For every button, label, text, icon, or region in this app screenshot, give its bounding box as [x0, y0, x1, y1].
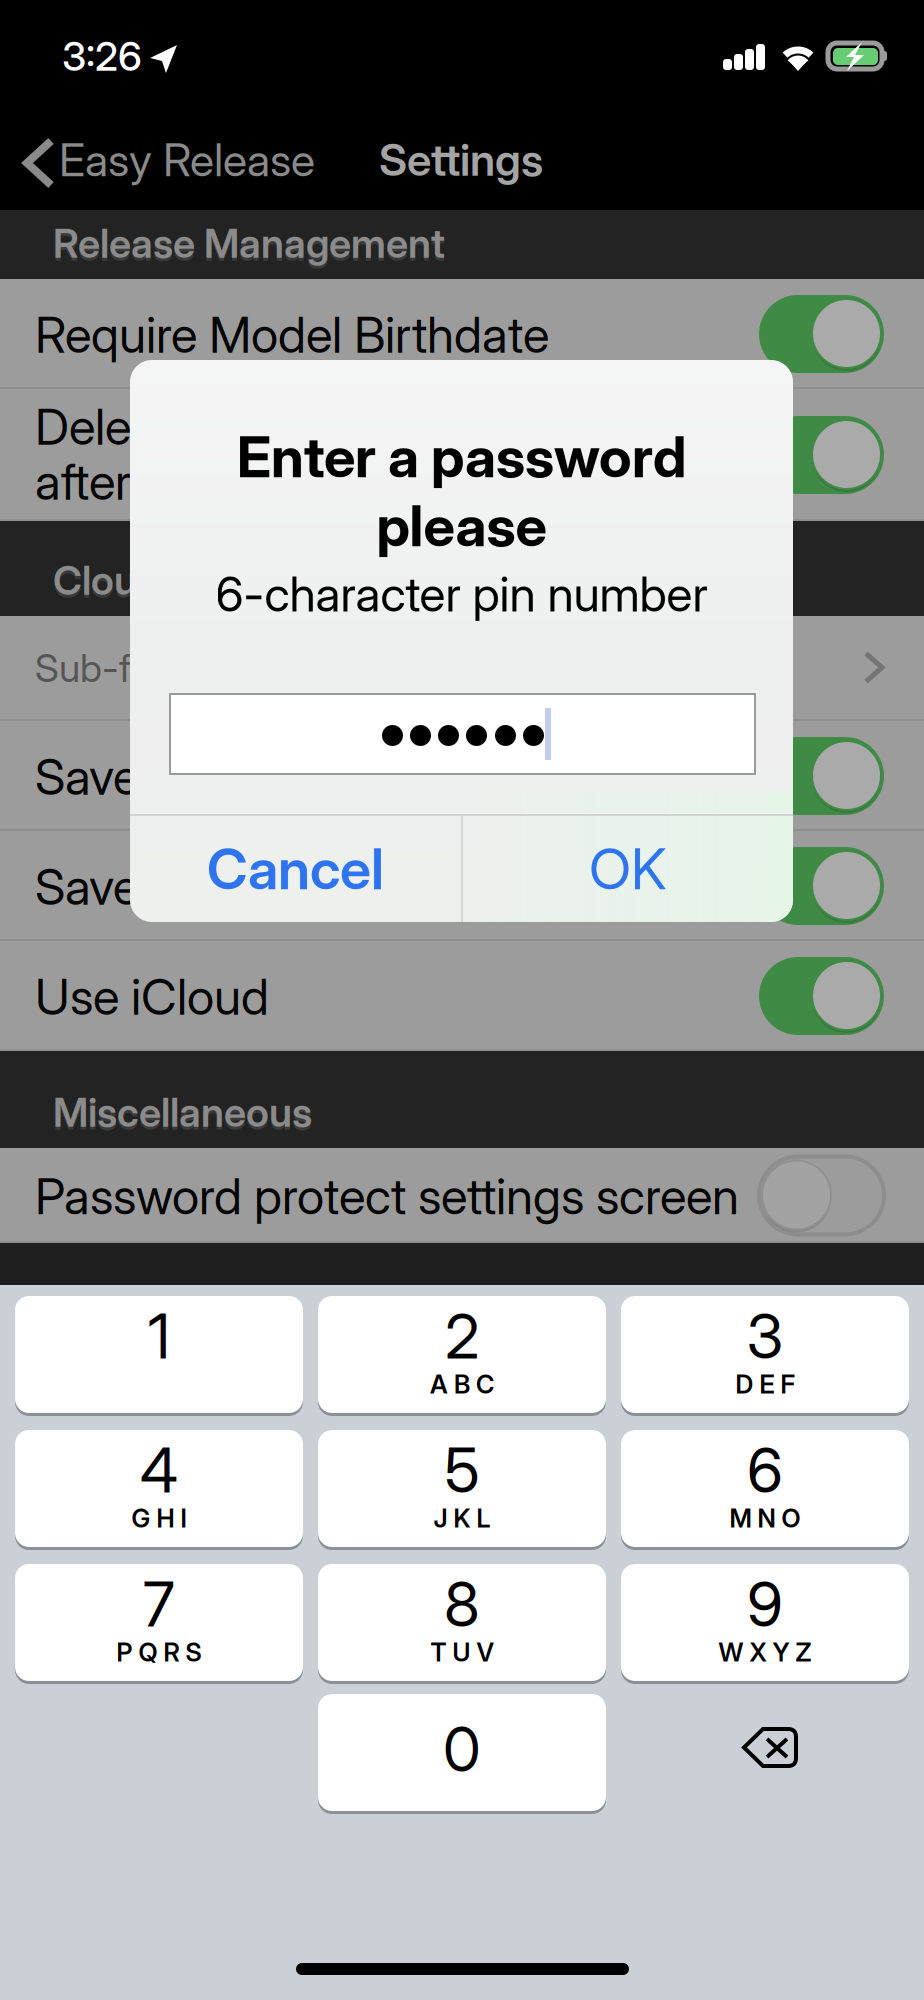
staticText: 7	[143, 1567, 175, 1641]
staticText: 6-character pin number	[215, 565, 707, 623]
button[interactable]: 8	[318, 1564, 606, 1685]
staticText: D E F	[735, 1369, 794, 1400]
staticText: J K L	[433, 1503, 490, 1534]
staticText: T U V	[430, 1637, 493, 1668]
button[interactable]: Delete released models	[0, 389, 924, 521]
staticText: Cloud Storage	[53, 556, 313, 604]
staticText: Release Management	[53, 222, 445, 270]
staticText: W X Y Z	[718, 1637, 811, 1668]
staticText: 5	[444, 1433, 479, 1507]
staticText: Use iCloud	[35, 967, 269, 1027]
button[interactable]: Password protect settings screen	[0, 1148, 924, 1243]
staticText: Miscellaneous	[53, 1091, 312, 1139]
staticText: A B C	[430, 1369, 494, 1400]
staticText: please	[376, 492, 546, 560]
button[interactable]: Sub-folder naming	[0, 616, 924, 721]
button[interactable]: 6	[621, 1430, 909, 1551]
staticText: 6	[747, 1433, 783, 1507]
button[interactable]: OK	[463, 816, 793, 922]
button[interactable]: 4	[15, 1430, 303, 1551]
button[interactable]: Delete	[742, 1726, 799, 1770]
staticText: Save release PDFs	[35, 747, 430, 807]
staticText: 1	[148, 1299, 170, 1373]
staticText: 9	[747, 1567, 783, 1641]
staticText: Save model photos	[35, 857, 442, 917]
button[interactable]: 3	[621, 1296, 909, 1417]
staticText: Cloud Storage	[53, 559, 313, 607]
button[interactable]: 1	[15, 1296, 303, 1417]
staticText: Miscellaneous	[53, 1088, 312, 1136]
button[interactable]: 5	[318, 1430, 606, 1551]
button[interactable]: Require Model Birthdate	[0, 279, 924, 389]
staticText: 3	[746, 1299, 783, 1373]
staticText: Password protect settings screen	[35, 1166, 739, 1226]
staticText: 0	[443, 1712, 481, 1786]
button[interactable]: Use iCloud	[0, 941, 924, 1051]
staticText: P Q R S	[116, 1637, 201, 1668]
staticText: Sub-folder naming	[35, 644, 348, 691]
staticText: M N O	[729, 1503, 800, 1534]
staticText: Cancel	[207, 835, 384, 903]
staticText: Require Model Birthdate	[35, 305, 549, 365]
staticText: after 30 days	[35, 452, 315, 512]
button[interactable]: Easy Release	[0, 110, 330, 210]
staticText: OK	[589, 835, 667, 903]
staticText: G H I	[131, 1503, 186, 1534]
staticText: Enter a password	[237, 423, 686, 491]
staticText: Delete released models	[35, 397, 532, 457]
staticText: 2	[445, 1299, 479, 1373]
staticText: Easy Release	[59, 133, 315, 187]
button[interactable]: 0	[318, 1694, 606, 1815]
staticText: 4	[140, 1433, 178, 1507]
button[interactable]: 2	[318, 1296, 606, 1417]
button[interactable]: Save model photos	[0, 831, 924, 941]
staticText: 8	[444, 1567, 480, 1641]
button[interactable]: 7	[15, 1564, 303, 1685]
staticText: 3:26	[62, 32, 142, 80]
staticText: Release Management	[53, 219, 445, 267]
button[interactable]: Save release PDFs	[0, 721, 924, 831]
staticText: Settings	[379, 133, 543, 186]
button[interactable]: Cancel	[130, 816, 461, 922]
button[interactable]: 9	[621, 1564, 909, 1685]
